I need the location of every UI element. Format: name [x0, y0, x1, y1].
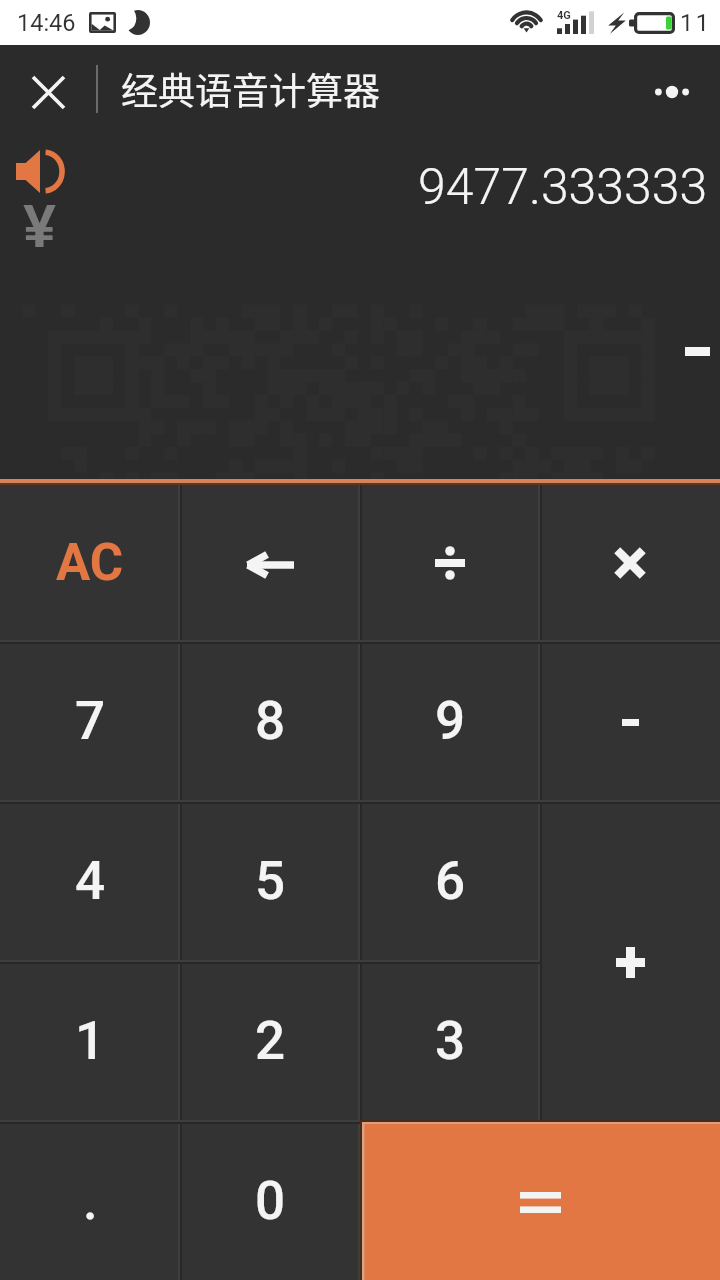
- staticText: 9477.333333: [418, 158, 708, 217]
- button[interactable]: Voice output: [0, 143, 80, 199]
- other: Divide: [435, 545, 465, 579]
- other: Backspace: [246, 553, 294, 577]
- staticText: 8: [255, 690, 286, 752]
- button[interactable]: 7: [0, 640, 180, 800]
- staticText: AC: [56, 533, 124, 593]
- button[interactable]: 5: [180, 800, 360, 960]
- button[interactable]: 6: [360, 800, 540, 960]
- button[interactable]: Equals: [360, 1120, 720, 1280]
- button[interactable]: 2: [180, 960, 360, 1120]
- staticText: 0: [255, 1170, 286, 1232]
- button[interactable]: Divide: [360, 484, 540, 640]
- staticText: 经典语音计算器: [121, 62, 380, 116]
- staticText: 5: [255, 850, 286, 912]
- other: Plus: [616, 945, 645, 976]
- button[interactable]: 0: [180, 1120, 360, 1280]
- staticText: 2: [255, 1010, 286, 1072]
- button[interactable]: Multiply: [540, 484, 720, 640]
- staticText: .: [83, 1170, 98, 1232]
- button[interactable]: Minus: [540, 640, 720, 800]
- other: Equals: [520, 1190, 561, 1211]
- staticText: 1: [75, 1010, 106, 1072]
- other: Minus: [622, 717, 639, 724]
- button[interactable]: AC: [0, 484, 180, 640]
- staticText: 11: [680, 9, 712, 37]
- button[interactable]: 9: [360, 640, 540, 800]
- button[interactable]: More options: [624, 45, 720, 132]
- other: Multiply: [616, 548, 644, 576]
- button[interactable]: Backspace: [180, 484, 360, 640]
- staticText: 9: [435, 690, 466, 752]
- staticText: 7: [75, 690, 106, 752]
- button[interactable]: .: [0, 1120, 180, 1280]
- staticText: 4: [75, 850, 106, 912]
- staticText: ¥: [23, 191, 57, 247]
- button[interactable]: 1: [0, 960, 180, 1120]
- staticText: 4G: [557, 9, 571, 22]
- button[interactable]: Currency: [0, 191, 80, 247]
- button[interactable]: Close: [0, 45, 96, 132]
- staticText: 3: [435, 1010, 466, 1072]
- button[interactable]: Plus: [540, 800, 720, 1120]
- staticText: 6: [435, 850, 466, 912]
- button[interactable]: 3: [360, 960, 540, 1120]
- button[interactable]: 4: [0, 800, 180, 960]
- staticText: 14:46: [17, 9, 76, 37]
- button[interactable]: 8: [180, 640, 360, 800]
